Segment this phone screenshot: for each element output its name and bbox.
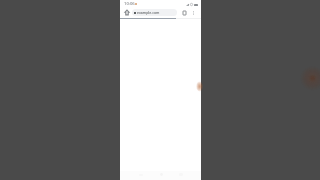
button[interactable]: Home <box>122 8 131 17</box>
staticText: 10:06 <box>124 1 135 7</box>
button[interactable]: Switch tabs <box>180 8 189 17</box>
button[interactable]: example.com <box>132 9 177 16</box>
button[interactable]: More options <box>189 8 198 17</box>
staticText: example.com <box>137 10 160 15</box>
